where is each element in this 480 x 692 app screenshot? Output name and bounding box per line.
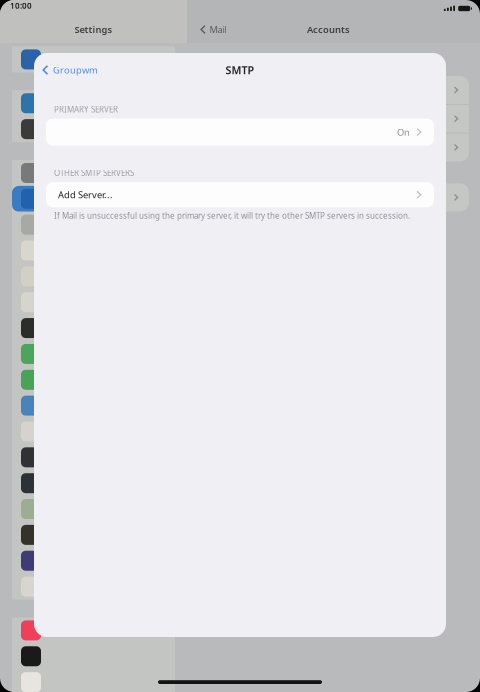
button[interactable]: Settings section	[12, 669, 175, 692]
button[interactable]: On	[46, 119, 434, 146]
button[interactable]: Settings section	[12, 393, 175, 419]
button[interactable]: Account	[205, 183, 469, 211]
button[interactable]: Groupwm	[34, 57, 98, 83]
button[interactable]: Settings section	[12, 617, 175, 643]
button[interactable]: Settings section	[12, 548, 175, 574]
staticText: OTHER SMTP SERVERS	[54, 168, 134, 178]
button[interactable]: Settings section	[12, 444, 175, 470]
staticText: SMTP	[225, 63, 254, 77]
staticText: Settings	[74, 23, 112, 36]
button[interactable]: Settings section	[12, 160, 175, 186]
staticText: Add Server...	[58, 189, 113, 201]
button[interactable]: Settings section	[12, 46, 175, 72]
button[interactable]: Settings section	[12, 341, 175, 367]
staticText: Accounts	[307, 23, 350, 36]
button[interactable]: Settings section	[12, 367, 175, 393]
button[interactable]: Add Server...	[46, 182, 434, 207]
button[interactable]: Settings section	[12, 574, 175, 600]
button[interactable]: Settings section	[12, 90, 175, 116]
button[interactable]: Settings section	[12, 643, 175, 669]
button[interactable]: Settings section	[12, 212, 175, 238]
button[interactable]: Settings section	[12, 496, 175, 522]
button[interactable]: Settings section	[12, 116, 175, 142]
button[interactable]: Settings section	[12, 522, 175, 548]
button[interactable]: Settings section	[12, 238, 175, 263]
staticText: Mail	[209, 23, 226, 36]
button[interactable]: Settings section	[12, 315, 175, 341]
button[interactable]: Settings section	[12, 186, 175, 212]
staticText: Groupwm	[53, 64, 98, 76]
button[interactable]: Account	[205, 105, 469, 133]
button[interactable]: Account	[205, 76, 469, 104]
staticText: PRIMARY SERVER	[54, 104, 118, 115]
button[interactable]: Settings section	[12, 470, 175, 496]
button[interactable]: Account	[205, 133, 469, 161]
button[interactable]: Settings section	[12, 263, 175, 289]
button[interactable]: Settings section	[12, 289, 175, 315]
button[interactable]: Settings section	[12, 419, 175, 444]
staticText: 10:00	[10, 0, 32, 11]
staticText: On	[397, 126, 410, 138]
staticText: If Mail is unsuccessful using the primar…	[54, 210, 410, 221]
